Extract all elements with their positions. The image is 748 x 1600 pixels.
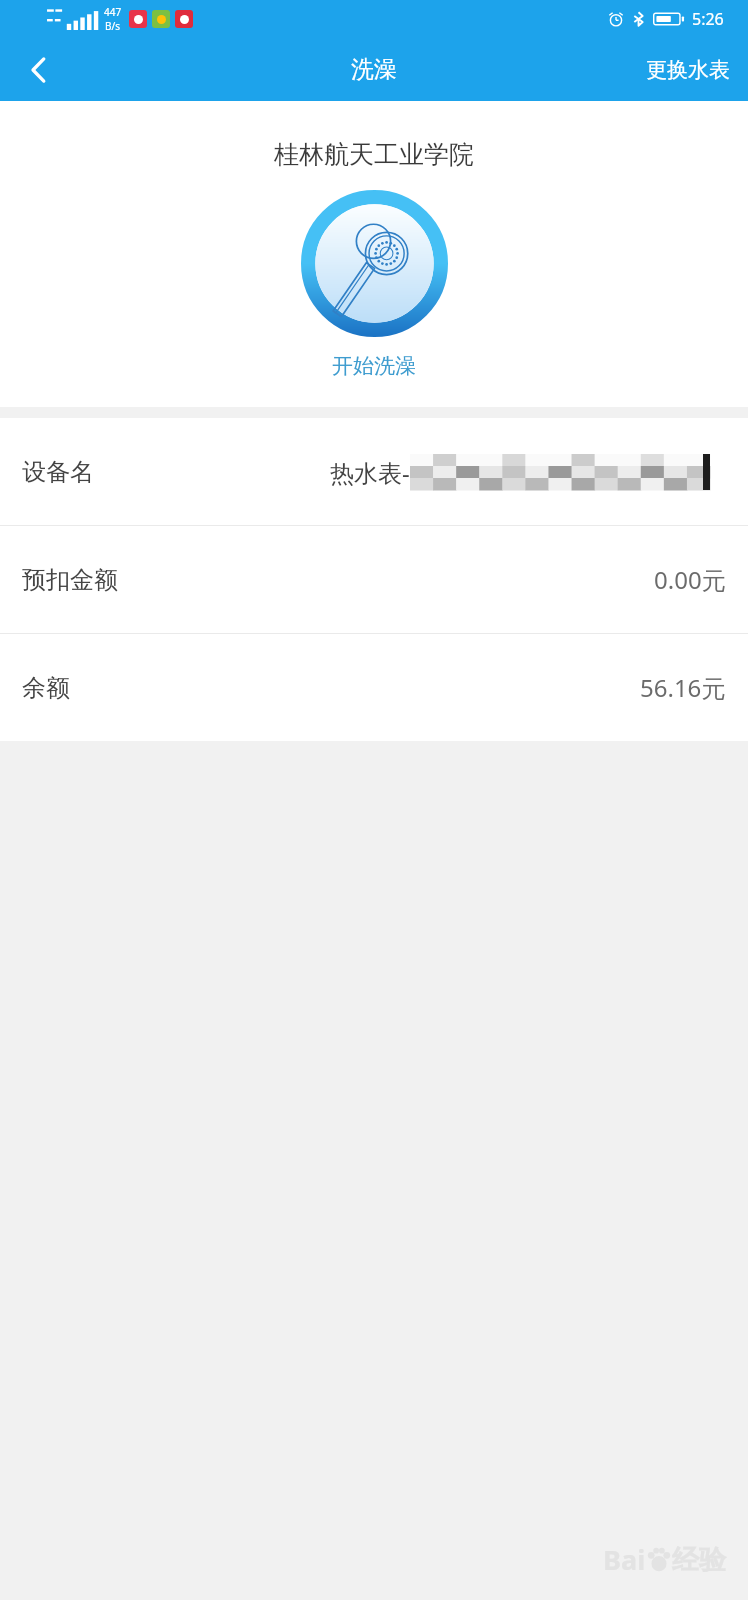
staticText: 开始洗澡 <box>332 353 416 379</box>
staticText: 热水表- <box>330 456 410 489</box>
staticText: 洗澡 <box>351 55 397 84</box>
staticText: 0.00元 <box>654 563 726 596</box>
button[interactable]: 预扣金额 <box>0 526 748 633</box>
staticText: B/s <box>105 19 121 33</box>
staticText: 设备名 <box>22 457 94 487</box>
staticText: 更换水表 <box>646 57 730 83</box>
button[interactable]: 开始洗澡 <box>0 353 748 379</box>
button[interactable]: 开始洗澡 <box>301 190 448 337</box>
staticText: 56.16元 <box>640 671 726 704</box>
staticText: 经验 <box>672 1543 726 1577</box>
staticText: 447 <box>104 5 122 19</box>
button[interactable]: 余额 <box>0 634 748 741</box>
staticText: 预扣金额 <box>22 565 118 595</box>
button[interactable]: 设备名 <box>0 418 748 525</box>
button[interactable]: 更换水表 <box>628 38 748 101</box>
button[interactable]: Back <box>0 38 78 101</box>
staticText: Bai <box>603 1541 646 1578</box>
staticText: 余额 <box>22 673 70 703</box>
staticText: 5:26 <box>692 8 724 30</box>
staticText: 桂林航天工业学院 <box>0 139 748 170</box>
